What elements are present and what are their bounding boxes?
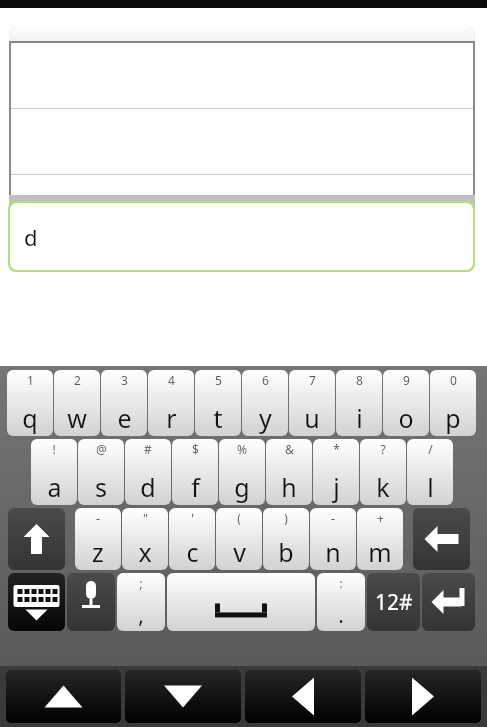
staticText: # [144,441,152,457]
button[interactable]: + [357,508,403,570]
staticText: g [234,470,250,504]
button[interactable]: ( [216,508,262,570]
staticText: o [398,401,414,435]
button[interactable]: - [75,508,121,570]
staticText: p [445,401,461,435]
button[interactable]: # [125,439,171,505]
staticText: & [285,441,294,457]
staticText: s [95,470,107,504]
button[interactable]: 2 [54,370,100,436]
staticText: " [143,510,148,526]
staticText: k [376,470,390,504]
button[interactable]: Shift [8,508,65,570]
staticText: : [339,575,343,591]
button[interactable]: ' [169,508,215,570]
staticText: - [96,510,100,526]
button[interactable]: ? [360,439,406,505]
staticText: z [92,535,104,569]
button[interactable]: @ [78,439,124,505]
button[interactable]: Right [365,670,481,723]
button[interactable]: " [122,508,168,570]
button[interactable]: Language EN [67,573,115,631]
staticText: ' [191,510,194,526]
staticText: 5 [215,372,222,388]
staticText: u [304,401,320,435]
button[interactable]: ; [117,573,165,631]
button[interactable]: % [219,439,265,505]
button[interactable]: ! [31,439,77,505]
staticText: , [138,601,144,630]
button[interactable]: ) [263,508,309,570]
staticText: + [377,510,384,526]
button[interactable]: Left [245,670,361,723]
staticText: t [213,401,223,435]
staticText: c [186,535,199,569]
staticText: % [237,441,247,457]
staticText: h [281,470,297,504]
button[interactable]: 7 [289,370,335,436]
staticText: m [368,535,392,569]
staticText: e [117,401,132,435]
staticText: @ [96,441,107,457]
staticText: r [166,401,177,435]
staticText: a [47,470,62,504]
button[interactable]: 9 [383,370,429,436]
button[interactable]: Hide keyboard [8,573,65,631]
button[interactable]: 4 [148,370,194,436]
staticText: l [427,470,434,504]
staticText: 8 [356,372,363,388]
button[interactable]: d [10,203,473,270]
staticText: 7 [309,372,316,388]
staticText: 9 [403,372,410,388]
staticText: ; [139,575,143,591]
button[interactable]: 5 [195,370,241,436]
button[interactable]: 6 [242,370,288,436]
button[interactable]: : [317,573,365,631]
button[interactable]: 1 [7,370,53,436]
button[interactable]: Up [6,670,121,723]
staticText: x [138,535,152,569]
staticText: 3 [121,372,128,388]
button[interactable]: Backspace [413,508,470,570]
staticText: f [191,470,200,504]
staticText: / [428,441,433,457]
staticText: w [67,401,87,435]
staticText: 1 [27,372,34,388]
button[interactable]: $ [172,439,218,505]
button[interactable]: - [310,508,356,570]
button[interactable]: / [407,439,453,505]
staticText: ? [380,441,386,457]
button[interactable]: Down [125,670,241,723]
staticText: d [24,222,38,252]
button[interactable]: 8 [336,370,382,436]
staticText: 12# [375,588,413,617]
button[interactable]: Enter [422,573,475,631]
staticText: 4 [168,372,175,388]
staticText: q [22,401,38,435]
button[interactable]: 0 [430,370,476,436]
staticText: * [333,441,340,457]
staticText: d [140,470,156,504]
button[interactable]: * [313,439,359,505]
button[interactable]: Space [167,573,315,631]
staticText: v [233,535,246,569]
staticText: ( [237,510,241,526]
staticText: ) [284,510,288,526]
button[interactable]: 3 [101,370,147,436]
staticText: 0 [450,372,457,388]
button[interactable]: Symbols [367,573,420,631]
staticText: n [325,535,341,569]
staticText: ! [52,441,56,457]
staticText: j [333,470,340,504]
staticText: b [278,535,294,569]
button[interactable]: & [266,439,312,505]
staticText: . [338,601,344,630]
staticText: $ [192,441,199,457]
staticText: - [331,510,335,526]
staticText: 2 [74,372,81,388]
staticText: 6 [262,372,269,388]
staticText: i [356,401,363,435]
staticText: y [259,401,272,435]
